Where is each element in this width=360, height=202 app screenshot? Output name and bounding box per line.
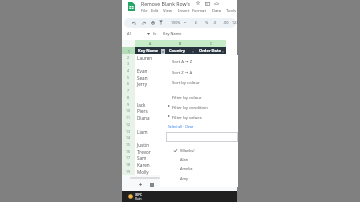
staticText: 123: [232, 20, 239, 25]
button[interactable]: Filter Order Date: [221, 49, 225, 54]
staticText: 17: [126, 155, 131, 160]
staticText: Molly: [137, 169, 149, 175]
staticText: 100%: [171, 20, 181, 25]
staticText: Jack: [137, 102, 146, 108]
staticText: Clear: [185, 124, 194, 129]
other: Redo: [142, 21, 146, 25]
staticText: A1: [127, 31, 132, 36]
other: Saved to Drive: [214, 2, 219, 5]
button[interactable]: Add sheet: [137, 181, 144, 188]
staticText: 16: [126, 149, 131, 154]
staticText: Filter by condition: [172, 104, 208, 110]
staticText: 18: [126, 162, 131, 167]
button[interactable]: Format: [192, 8, 206, 14]
staticText: Piers: [137, 108, 148, 114]
staticText: Insert: [178, 8, 190, 14]
other: Move: [205, 2, 210, 6]
other: Paint format: [159, 20, 163, 25]
staticText: Liam: [137, 129, 148, 135]
staticText: Key Name: [138, 48, 159, 53]
button[interactable]: Order Date: [199, 48, 222, 53]
staticText: 8: [127, 95, 130, 100]
staticText: A: [149, 41, 152, 46]
button[interactable]: Data: [212, 8, 222, 14]
staticText: 11: [126, 115, 131, 120]
button[interactable]: View: [163, 8, 172, 14]
staticText: Sort by colour: [172, 79, 200, 85]
staticText: Remove Blank Row's: [141, 1, 191, 8]
staticText: Sort Z → A: [172, 69, 193, 75]
button[interactable]: Insert: [178, 8, 190, 14]
staticText: 2: [127, 55, 130, 60]
staticText: Format: [192, 8, 206, 14]
button[interactable]: [160, 101, 237, 111]
staticText: 30°C: [135, 193, 143, 197]
staticText: Filter by values: [172, 114, 202, 120]
staticText: .00: [223, 20, 229, 25]
staticText: (Blanks): [180, 148, 195, 153]
staticText: Filter by colour: [172, 94, 202, 100]
staticText: Trevor: [137, 149, 151, 155]
staticText: Justin: [137, 142, 149, 148]
staticText: Lauren: [137, 55, 153, 61]
staticText: 9: [127, 102, 130, 107]
staticText: Key Name: [163, 31, 182, 36]
staticText: Data: [212, 8, 222, 14]
staticText: Evan: [137, 68, 148, 74]
other: Undo: [132, 21, 136, 25]
staticText: 10: [126, 108, 131, 113]
staticText: Karen: [137, 162, 150, 168]
button[interactable]: [160, 55, 237, 65]
staticText: 13: [126, 129, 131, 134]
button[interactable]: Filter Key Name: [161, 49, 165, 54]
button[interactable]: All sheets: [148, 181, 155, 188]
staticText: Country: [169, 48, 186, 53]
staticText: 4: [127, 68, 130, 73]
button[interactable]: [160, 76, 237, 86]
staticText: 14: [126, 135, 131, 140]
staticText: 1: [128, 49, 130, 53]
staticText: Sean: [137, 75, 148, 81]
button[interactable]: Filter Country: [191, 49, 195, 54]
button[interactable]: [160, 173, 237, 182]
staticText: View: [163, 8, 172, 14]
button[interactable]: Key Name: [138, 48, 159, 53]
staticText: 3: [127, 61, 130, 66]
button[interactable]: Country: [169, 48, 186, 53]
staticText: Amelia: [180, 166, 193, 171]
staticText: 7: [127, 88, 130, 93]
staticText: ·: [182, 124, 185, 129]
staticText: Sort A → Z: [172, 58, 193, 64]
staticText: Edit: [151, 8, 159, 14]
button[interactable]: [160, 145, 237, 154]
staticText: 5: [127, 75, 130, 80]
button[interactable]: [160, 154, 237, 163]
staticText: Sam: [137, 155, 147, 161]
staticText: .0: [213, 20, 217, 25]
staticText: Diana: [137, 115, 150, 121]
other: Print: [151, 21, 155, 25]
button[interactable]: Select all: [168, 124, 194, 129]
button[interactable]: File: [141, 8, 148, 14]
staticText: 15: [126, 142, 131, 147]
staticText: Jerry: [137, 81, 147, 87]
staticText: Alan: [180, 157, 189, 162]
button[interactable]: [160, 66, 237, 76]
staticText: File: [141, 8, 148, 14]
other: Star: [196, 1, 200, 5]
staticText: 12: [126, 122, 131, 127]
button[interactable]: Tools: [226, 8, 236, 14]
staticText: fx: [153, 31, 157, 36]
button[interactable]: [160, 91, 237, 101]
button[interactable]: [160, 164, 237, 173]
staticText: Tools: [226, 8, 236, 14]
button[interactable]: Edit: [151, 8, 159, 14]
staticText: %: [205, 20, 209, 25]
staticText: Select all: [168, 124, 182, 129]
staticText: Amy: [180, 176, 189, 181]
staticText: £: [195, 20, 198, 25]
staticText: B: [179, 41, 182, 46]
button[interactable]: [160, 111, 237, 121]
staticText: C: [210, 41, 213, 46]
staticText: 19: [126, 169, 131, 174]
